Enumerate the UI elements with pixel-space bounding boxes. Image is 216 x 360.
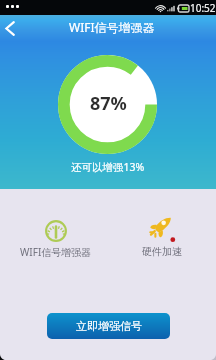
staticText: 87% xyxy=(90,91,127,116)
button[interactable]: Hardware acceleration xyxy=(108,189,216,279)
staticText: WIFI信号增强器 xyxy=(20,245,92,259)
staticText: WIFI信号增强器 xyxy=(69,19,155,35)
button[interactable]: Back xyxy=(0,15,22,41)
staticText: 还可以增强13% xyxy=(71,160,145,174)
staticText: 硬件加速 xyxy=(142,245,182,258)
staticText: 立即增强信号 xyxy=(76,319,142,333)
button[interactable]: 立即增强信号 xyxy=(47,313,170,339)
button[interactable]: WIFI signal booster xyxy=(0,189,108,279)
staticText: 10:52 xyxy=(190,1,216,15)
